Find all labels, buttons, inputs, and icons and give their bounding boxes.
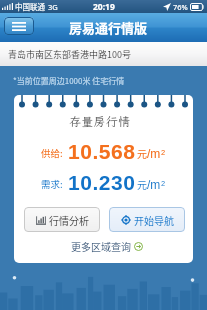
staticText: 供给:	[41, 146, 63, 160]
staticText: 需求:	[41, 177, 63, 191]
staticText: /m	[147, 178, 161, 191]
staticText: 20:19	[93, 1, 115, 13]
staticText: 更多区域查询	[71, 239, 131, 253]
button[interactable]: 更多区域查询	[71, 239, 143, 253]
button[interactable]: 开始导航	[109, 207, 185, 232]
staticText: 76%	[173, 2, 188, 12]
staticText: 3G	[48, 2, 58, 12]
staticText: 10.568	[68, 140, 136, 163]
staticText: 青岛市南区东部香港中路100号	[8, 48, 131, 61]
staticText: 存量房行情	[69, 114, 131, 130]
button[interactable]: Menu	[4, 17, 34, 35]
staticText: /m	[147, 147, 161, 160]
staticText: 开始导航	[134, 213, 174, 227]
staticText: 行情分析	[49, 213, 89, 227]
staticText: 2	[161, 148, 166, 156]
staticText: *当前位置周边1000米 住宅行情	[13, 75, 125, 87]
staticText: 元	[137, 177, 147, 191]
staticText: 元	[137, 146, 147, 160]
staticText: 房易通行情版	[69, 18, 148, 37]
button[interactable]: 行情分析	[24, 207, 100, 232]
staticText: 2	[161, 179, 166, 187]
staticText: 10.230	[68, 171, 136, 194]
staticText: 中国联通	[15, 1, 45, 12]
